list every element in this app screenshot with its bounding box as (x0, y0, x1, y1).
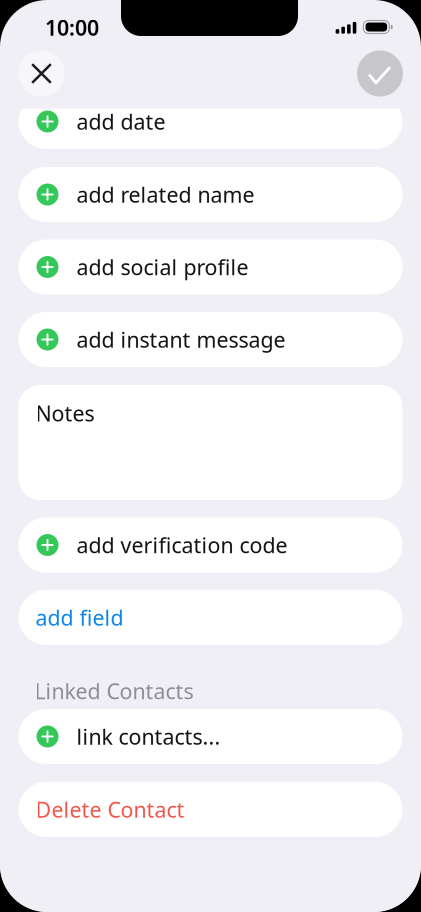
staticText: link contacts... (76, 722, 220, 751)
staticText: add date (76, 107, 165, 136)
button[interactable]: add instant message (18, 312, 402, 367)
button[interactable]: Done (357, 50, 403, 96)
staticText: add instant message (76, 325, 285, 354)
button[interactable]: Cancel (18, 50, 64, 96)
button[interactable]: add verification code (18, 517, 402, 572)
button[interactable]: add related name (18, 167, 402, 222)
button[interactable]: add date (18, 94, 402, 149)
staticText: add related name (76, 180, 254, 209)
button[interactable]: Delete Contact (18, 782, 402, 837)
staticText: Notes (35, 399, 94, 427)
staticText: 10:00 (45, 13, 99, 42)
button[interactable]: link contacts... (18, 709, 402, 764)
staticText: add field (35, 603, 123, 632)
staticText: Linked Contacts (34, 677, 193, 705)
staticText: Delete Contact (35, 795, 184, 824)
staticText: add social profile (76, 253, 248, 281)
button[interactable]: add social profile (18, 239, 402, 294)
button[interactable]: add field (18, 590, 402, 645)
staticText: add verification code (76, 531, 287, 559)
